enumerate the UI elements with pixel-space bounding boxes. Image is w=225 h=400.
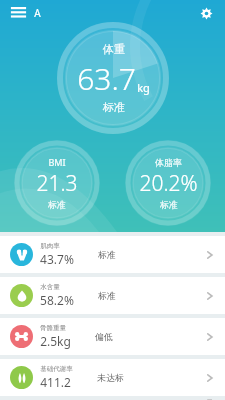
staticText: 标准 — [98, 249, 116, 260]
staticText: 体重 — [103, 42, 125, 56]
button[interactable]: 肌肉率 — [0, 236, 225, 273]
staticText: 水含量 — [40, 283, 60, 291]
staticText: A — [34, 6, 41, 20]
staticText: 肌肉率 — [40, 242, 60, 250]
staticText: 未达标 — [97, 372, 124, 383]
staticText: 20.2% — [139, 169, 198, 198]
staticText: 43.7% — [40, 251, 74, 267]
staticText: 标准 — [48, 199, 66, 210]
staticText: 标准 — [160, 199, 178, 210]
staticText: 2.5kg — [40, 333, 71, 349]
staticText: 标准 — [98, 290, 116, 301]
button[interactable]: Menu — [8, 3, 28, 23]
staticText: 411.2 — [40, 374, 71, 390]
staticText: 骨骼重量 — [40, 324, 66, 332]
button[interactable]: Settings — [195, 2, 217, 24]
staticText: 63.7 — [77, 58, 136, 99]
staticText: BMI — [48, 156, 66, 168]
staticText: 21.3 — [36, 169, 78, 198]
button[interactable]: 水含量 — [0, 277, 225, 314]
staticText: 基础代谢率 — [40, 365, 73, 373]
staticText: 58.2% — [40, 292, 74, 308]
staticText: 偏低 — [95, 331, 113, 342]
staticText: 体脂率 — [155, 157, 182, 168]
button[interactable]: 骨骼重量 — [0, 318, 225, 355]
button[interactable]: 基础代谢率 — [0, 359, 225, 396]
staticText: kg — [137, 80, 150, 95]
staticText: 标准 — [103, 100, 125, 114]
